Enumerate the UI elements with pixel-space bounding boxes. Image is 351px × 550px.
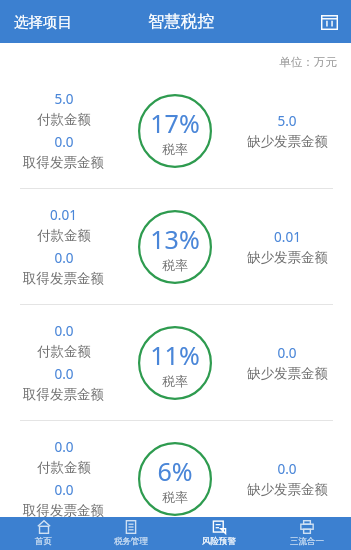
staticText: 付款金额 — [37, 227, 91, 244]
staticText: 取得发票金额 — [23, 386, 104, 403]
button[interactable]: 0.0 — [0, 305, 351, 420]
staticText: 取得发票金额 — [23, 502, 104, 519]
button[interactable]: 首页 — [0, 517, 87, 550]
staticText: 6% — [157, 454, 193, 488]
button[interactable]: 0.01 — [0, 189, 351, 304]
staticText: 付款金额 — [37, 343, 91, 360]
button[interactable]: 税务管理 — [87, 517, 175, 550]
staticText: 0.0 — [277, 344, 297, 362]
staticText: 0.0 — [54, 481, 74, 499]
staticText: 缺少发票金额 — [247, 365, 328, 382]
button[interactable]: Calendar — [308, 5, 351, 38]
staticText: 缺少发票金额 — [247, 249, 328, 266]
staticText: 税率 — [162, 373, 188, 389]
staticText: 0.0 — [54, 365, 74, 383]
staticText: 三流合一 — [290, 536, 324, 547]
staticText: 0.01 — [50, 206, 77, 224]
staticText: 付款金额 — [37, 459, 91, 476]
staticText: 5.0 — [54, 90, 74, 108]
staticText: 取得发票金额 — [23, 154, 104, 171]
staticText: 风险预警 — [202, 536, 236, 547]
staticText: 税率 — [162, 141, 188, 157]
staticText: 缺少发票金额 — [247, 133, 328, 150]
staticText: 智慧税控 — [148, 11, 214, 32]
staticText: 缺少发票金额 — [247, 481, 328, 498]
staticText: 13% — [150, 222, 200, 256]
button[interactable]: 0.0 — [0, 421, 351, 536]
staticText: 0.01 — [274, 228, 301, 246]
staticText: 11% — [150, 338, 200, 372]
staticText: 付款金额 — [37, 111, 91, 128]
staticText: 选择项目 — [14, 13, 72, 31]
staticText: 税率 — [162, 489, 188, 505]
button[interactable]: 三流合一 — [263, 517, 351, 550]
staticText: 17% — [150, 106, 200, 140]
staticText: 5.0 — [277, 112, 297, 130]
staticText: 0.0 — [54, 322, 74, 340]
staticText: 税率 — [162, 257, 188, 273]
staticText: 0.0 — [54, 438, 74, 456]
staticText: 首页 — [35, 536, 52, 547]
button[interactable]: 5.0 — [0, 73, 351, 188]
staticText: 0.0 — [54, 133, 74, 151]
staticText: 0.0 — [54, 249, 74, 267]
staticText: 取得发票金额 — [23, 270, 104, 287]
button[interactable]: 选择项目 — [0, 5, 86, 39]
button[interactable]: 风险预警 — [175, 517, 263, 550]
staticText: 0.0 — [277, 460, 297, 478]
staticText: 单位：万元 — [279, 55, 337, 69]
staticText: 税务管理 — [114, 536, 148, 547]
